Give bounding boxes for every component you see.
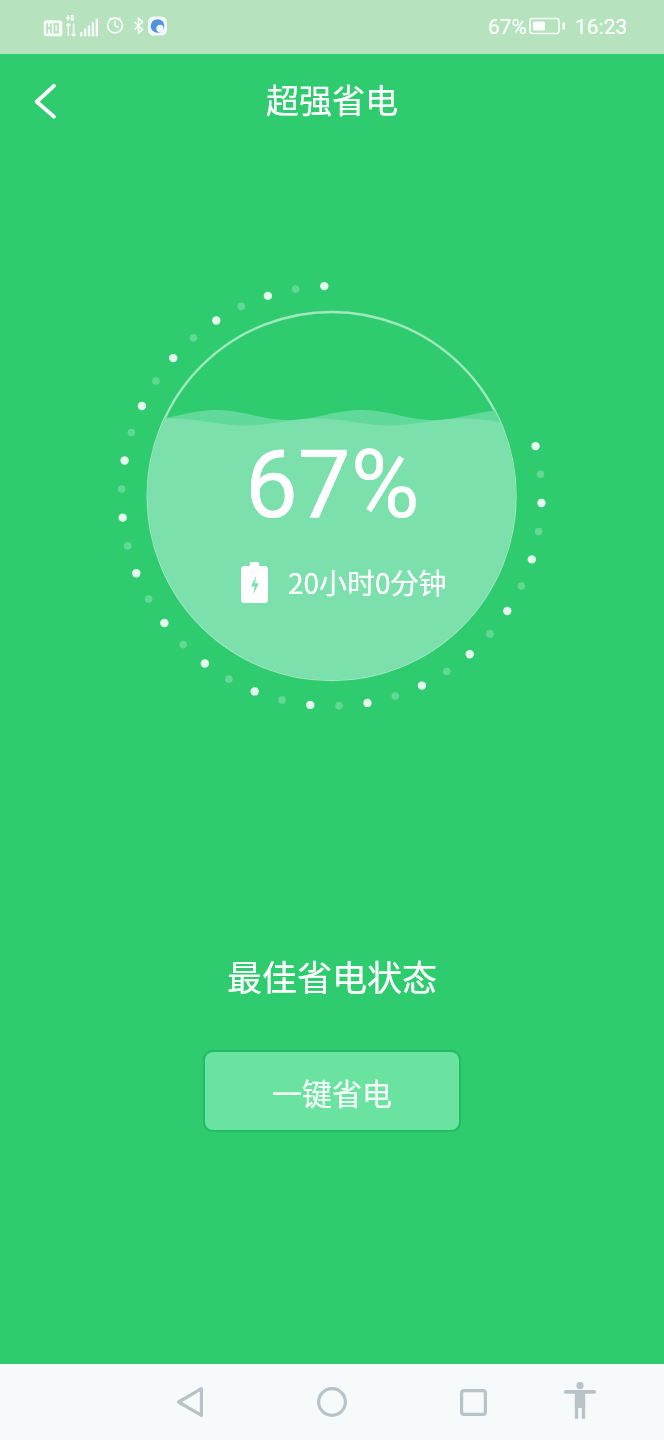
staticText: 16:23 <box>575 15 628 40</box>
staticText: 超强省电 <box>266 75 398 123</box>
staticText: 20小时0分钟 <box>288 562 447 603</box>
button[interactable]: Home <box>292 1364 372 1440</box>
button[interactable]: Accessibility <box>540 1364 620 1440</box>
staticText: 最佳省电状态 <box>227 950 438 994</box>
button[interactable]: Back <box>150 1364 230 1440</box>
button[interactable]: Back <box>12 69 76 133</box>
button[interactable]: 一键省电 <box>205 1052 459 1130</box>
staticText: 67% <box>245 430 420 540</box>
staticText: 67% <box>488 15 527 40</box>
staticText: 一键省电 <box>272 1070 392 1113</box>
button[interactable]: Recent apps <box>433 1364 513 1440</box>
